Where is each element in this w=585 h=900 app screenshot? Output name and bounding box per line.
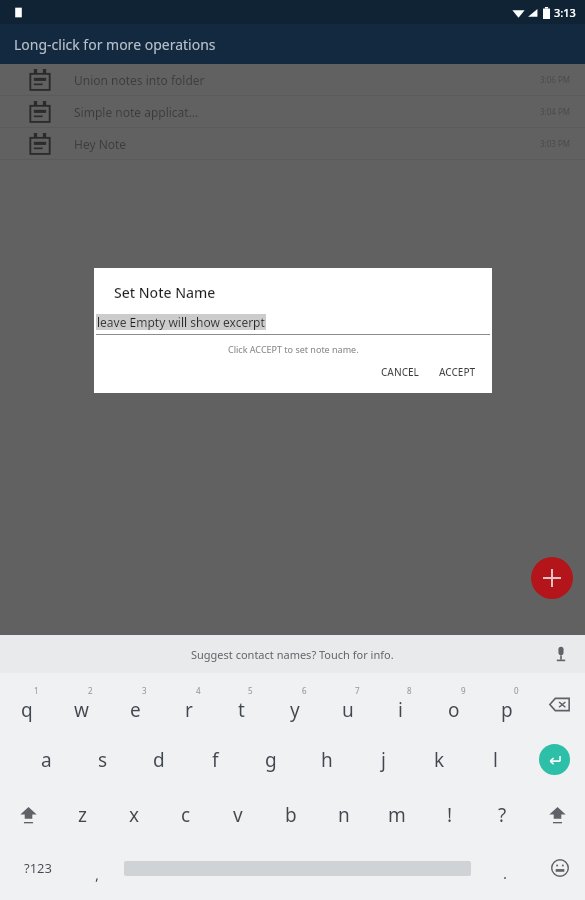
staticText: 1 <box>34 685 39 696</box>
button[interactable]: 5 <box>215 676 268 732</box>
staticText: x <box>129 802 140 828</box>
button[interactable]: 2 <box>54 676 108 732</box>
staticText: ? <box>498 802 507 828</box>
staticText: h <box>321 747 333 773</box>
button[interactable]: ACCEPT <box>433 361 482 383</box>
staticText: b <box>285 802 297 828</box>
button[interactable]: Suggest contact names? Touch for info. <box>0 635 585 673</box>
button[interactable]: x <box>108 787 160 842</box>
button[interactable]: g <box>243 732 299 787</box>
staticText: Suggest contact names? Touch for info. <box>191 647 394 662</box>
staticText: u <box>342 697 354 723</box>
staticText: 0 <box>514 685 519 696</box>
button[interactable]: z <box>56 787 108 842</box>
staticText: j <box>381 747 386 773</box>
button[interactable]: 7 <box>321 676 374 732</box>
staticText: q <box>21 697 33 723</box>
staticText: i <box>398 697 403 723</box>
button[interactable]: 9 <box>427 676 480 732</box>
staticText: Click ACCEPT to set note name. <box>228 343 359 355</box>
staticText: CANCEL <box>381 365 419 379</box>
staticText: 6 <box>302 685 307 696</box>
staticText: f <box>212 747 219 773</box>
button[interactable]: Space <box>120 842 475 894</box>
button[interactable]: 1 <box>0 676 54 732</box>
staticText: . <box>503 863 508 883</box>
button[interactable]: c <box>160 787 212 842</box>
staticText: 7 <box>355 685 360 696</box>
button[interactable]: j <box>355 732 411 787</box>
staticText: ACCEPT <box>439 365 476 379</box>
staticText: Set Note Name <box>114 283 216 302</box>
staticText: l <box>493 747 498 773</box>
staticText: z <box>78 802 87 828</box>
staticText: y <box>290 697 300 723</box>
staticText: 3:13 <box>554 5 576 20</box>
staticText: Hey Note <box>74 136 127 152</box>
button[interactable]: . <box>475 842 535 894</box>
button[interactable]: k <box>411 732 467 787</box>
button[interactable]: ! <box>423 787 476 842</box>
staticText: 3:04 PM <box>540 106 571 117</box>
button[interactable]: d <box>131 732 187 787</box>
button[interactable]: s <box>75 732 131 787</box>
button[interactable]: Long-click for more operations <box>0 24 585 64</box>
button[interactable]: Union notes into folder <box>0 64 585 95</box>
button[interactable]: l <box>467 732 523 787</box>
staticText: n <box>338 802 350 828</box>
staticText: 4 <box>196 685 201 696</box>
button[interactable]: h <box>299 732 355 787</box>
staticText: 3 <box>142 685 147 696</box>
staticText: t <box>238 697 245 723</box>
button[interactable]: 0 <box>480 676 533 732</box>
button[interactable]: Emoji <box>535 842 585 894</box>
button[interactable]: a <box>18 732 75 787</box>
staticText: 5 <box>248 685 253 696</box>
button[interactable]: Shift <box>0 787 56 842</box>
button[interactable]: Shift <box>529 787 585 842</box>
button[interactable]: 4 <box>162 676 215 732</box>
staticText: 2 <box>88 685 93 696</box>
button[interactable]: 6 <box>268 676 321 732</box>
button[interactable]: 3 <box>108 676 162 732</box>
button[interactable]: b <box>264 787 317 842</box>
button[interactable]: Hey Note <box>0 128 585 159</box>
button[interactable]: Add note <box>531 557 573 599</box>
staticText: 9 <box>461 685 466 696</box>
staticText: r <box>185 697 193 723</box>
staticText: v <box>233 802 243 828</box>
button[interactable]: Backspace <box>533 676 585 732</box>
staticText: 8 <box>407 685 412 696</box>
button[interactable]: 8 <box>374 676 427 732</box>
button[interactable]: CANCEL <box>375 361 425 383</box>
button[interactable]: Simple note applicat… <box>0 96 585 127</box>
button[interactable]: n <box>317 787 370 842</box>
staticText: , <box>95 864 100 884</box>
staticText: ! <box>447 802 453 828</box>
button[interactable]: leave Empty will show excerpt <box>97 314 265 330</box>
button[interactable]: ?123 <box>0 842 75 894</box>
staticText: w <box>74 697 89 723</box>
button[interactable]: ? <box>476 787 529 842</box>
staticText: p <box>501 697 513 723</box>
button[interactable]: Enter <box>523 732 585 787</box>
staticText: leave Empty will show excerpt <box>97 314 265 330</box>
staticText: Long-click for more operations <box>14 35 216 54</box>
staticText: a <box>41 747 52 773</box>
staticText: k <box>434 747 445 773</box>
button[interactable]: v <box>212 787 264 842</box>
staticText: o <box>448 697 460 723</box>
staticText: e <box>130 697 141 723</box>
staticText: Simple note applicat… <box>74 104 199 120</box>
staticText: 3:06 PM <box>540 74 571 85</box>
button[interactable]: m <box>370 787 423 842</box>
button[interactable]: Voice input <box>549 642 573 666</box>
staticText: Union notes into folder <box>74 72 205 88</box>
staticText: 3:03 PM <box>540 138 571 149</box>
staticText: ?123 <box>24 859 52 877</box>
staticText: m <box>388 802 406 828</box>
staticText: d <box>153 747 165 773</box>
button[interactable]: f <box>187 732 243 787</box>
button[interactable]: , <box>75 842 120 894</box>
staticText: s <box>98 747 108 773</box>
